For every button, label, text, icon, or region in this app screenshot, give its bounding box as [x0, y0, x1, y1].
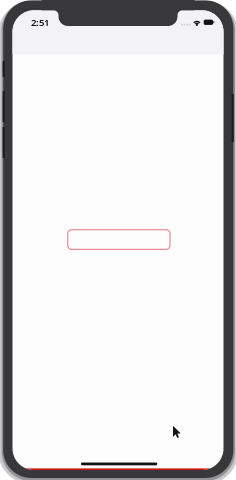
staticText: 2:51	[31, 16, 49, 29]
button[interactable]: Text field	[68, 230, 170, 249]
